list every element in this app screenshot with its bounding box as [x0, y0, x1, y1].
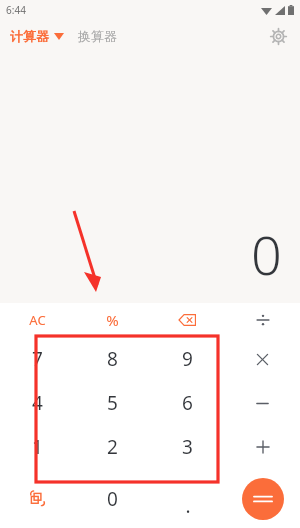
button[interactable]: 2 [75, 425, 150, 469]
button[interactable]: % [75, 303, 150, 337]
staticText: % [106, 310, 119, 330]
button[interactable]: 8 [75, 337, 150, 381]
button[interactable]: 7 [0, 337, 75, 381]
staticText: 3 [182, 434, 193, 460]
staticText: 8 [107, 346, 118, 372]
staticText: 9 [182, 346, 193, 372]
staticText: 2 [107, 434, 118, 460]
button[interactable]: 1 [0, 425, 75, 469]
button[interactable]: 4 [0, 381, 75, 425]
button[interactable]: 3 [150, 425, 225, 469]
staticText: 0 [107, 486, 118, 512]
staticText: 7 [32, 346, 43, 372]
button[interactable]: . [150, 469, 225, 528]
button[interactable]: 0 [75, 469, 150, 528]
staticText: 计算器 [10, 28, 49, 44]
staticText: 换算器 [78, 28, 117, 44]
button[interactable]: 5 [75, 381, 150, 425]
staticText: . [185, 493, 191, 519]
button[interactable]: 6 [150, 381, 225, 425]
button[interactable] [225, 337, 300, 381]
staticText: 6:44 [6, 3, 26, 17]
button[interactable]: Divide [225, 303, 300, 337]
staticText: 4 [32, 390, 43, 416]
staticText: 1 [32, 434, 43, 460]
staticText: 5 [107, 390, 118, 416]
staticText: AC [29, 311, 46, 329]
button[interactable]: Backspace [150, 303, 225, 337]
button[interactable]: 计算器 [0, 24, 70, 48]
button[interactable]: 9 [150, 337, 225, 381]
button[interactable] [225, 381, 300, 425]
staticText: 6 [182, 390, 193, 416]
button[interactable]: History [0, 469, 75, 528]
button[interactable]: AC [0, 303, 75, 337]
button[interactable]: Equals [242, 478, 284, 520]
button[interactable] [225, 425, 300, 469]
button[interactable]: 换算器 [70, 24, 125, 48]
staticText: 0 [251, 217, 282, 291]
button[interactable]: Settings [264, 22, 292, 50]
